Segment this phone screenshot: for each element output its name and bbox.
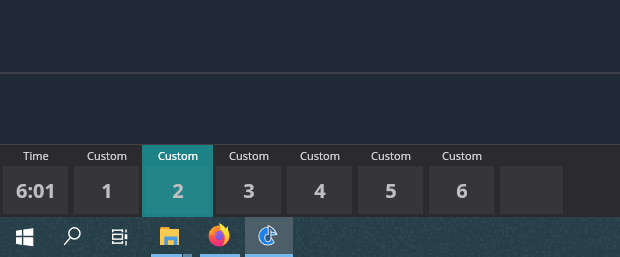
button[interactable] — [497, 145, 566, 217]
staticText: 5 — [385, 177, 397, 204]
staticText: 6:01 — [16, 177, 56, 204]
staticText: 1 — [101, 177, 113, 204]
staticText: Custom — [300, 148, 340, 163]
button[interactable]: Start — [7, 217, 41, 257]
button[interactable]: Custom — [142, 145, 213, 217]
staticText: Custom — [158, 148, 198, 163]
button[interactable]: Search — [57, 217, 91, 257]
button[interactable]: Time — [0, 145, 71, 217]
button[interactable]: File Explorer — [149, 217, 193, 257]
staticText: Custom — [371, 148, 411, 163]
button[interactable]: Task view — [103, 217, 136, 257]
staticText: Custom — [442, 148, 482, 163]
button[interactable]: Timer app — [245, 217, 293, 257]
staticText: 3 — [243, 177, 255, 204]
button[interactable]: Custom — [284, 145, 355, 217]
button[interactable]: Custom — [426, 145, 497, 217]
staticText: Time — [23, 148, 49, 163]
button[interactable]: Custom — [71, 145, 142, 217]
staticText: Custom — [87, 148, 127, 163]
staticText: Custom — [229, 148, 269, 163]
staticText: 4 — [314, 177, 326, 204]
button[interactable]: Custom — [213, 145, 284, 217]
staticText: 2 — [172, 177, 184, 204]
staticText: 6 — [456, 177, 468, 204]
button[interactable]: Firefox — [199, 217, 241, 257]
button[interactable]: Custom — [355, 145, 426, 217]
